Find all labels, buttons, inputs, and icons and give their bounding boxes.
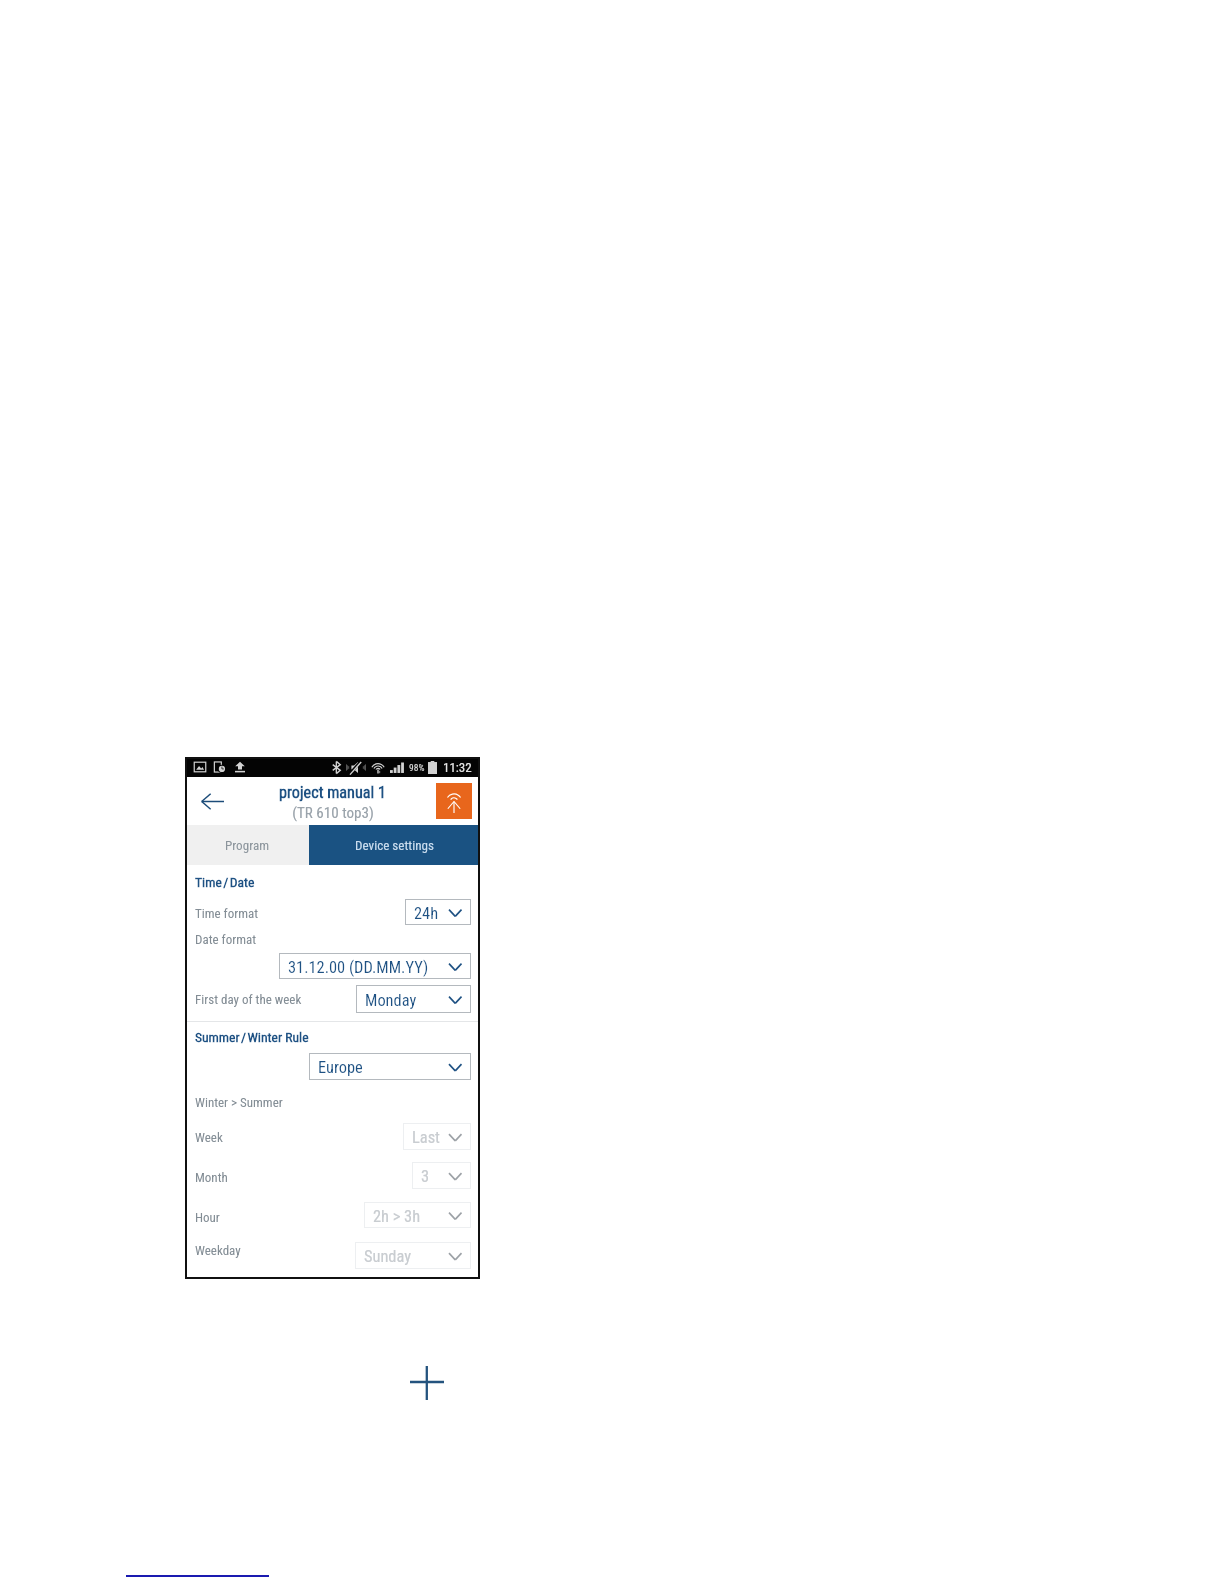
staticText: 11:32 — [443, 760, 472, 775]
staticText: Month — [195, 1170, 228, 1185]
button[interactable]: 31.12.00 (DD.MM.YY) — [279, 953, 471, 979]
staticText: Monday — [365, 991, 417, 1010]
staticText: First day of the week — [195, 992, 302, 1007]
button[interactable]: Sunday — [355, 1242, 471, 1269]
staticText: Summer / Winter Rule — [195, 1029, 309, 1045]
button[interactable]: 24h — [405, 899, 471, 925]
staticText: 2h > 3h — [373, 1207, 421, 1226]
staticText: 3 — [421, 1167, 430, 1186]
staticText: 31.12.00 (DD.MM.YY) — [288, 958, 429, 977]
staticText: Last — [412, 1128, 440, 1147]
button[interactable]: 3 — [412, 1162, 471, 1189]
staticText: (TR 610 top3) — [292, 804, 374, 822]
button[interactable]: 2h > 3h — [364, 1202, 471, 1228]
staticText: Time / Date — [195, 874, 255, 890]
staticText: Winter > Summer — [195, 1095, 283, 1110]
button[interactable]: Device settings — [309, 825, 480, 865]
staticText: Weekday — [195, 1243, 241, 1258]
staticText: Week — [195, 1130, 223, 1145]
staticText: 98% — [409, 762, 425, 773]
staticText: Hour — [195, 1210, 220, 1225]
staticText: project manual 1 — [279, 783, 386, 802]
staticText: 24h — [414, 904, 439, 923]
button[interactable]: Program — [185, 825, 309, 865]
button[interactable]: Connect to device — [436, 783, 472, 819]
staticText: Program — [225, 838, 270, 853]
staticText: Europe — [318, 1058, 363, 1077]
button[interactable]: Europe — [309, 1053, 471, 1080]
button[interactable]: Last — [403, 1123, 471, 1150]
staticText: Date format — [195, 932, 257, 947]
button[interactable]: Back — [197, 786, 227, 816]
staticText: Sunday — [364, 1247, 412, 1266]
staticText: Time format — [195, 906, 259, 921]
button[interactable]: Monday — [356, 985, 471, 1013]
staticText: Device settings — [355, 838, 434, 853]
